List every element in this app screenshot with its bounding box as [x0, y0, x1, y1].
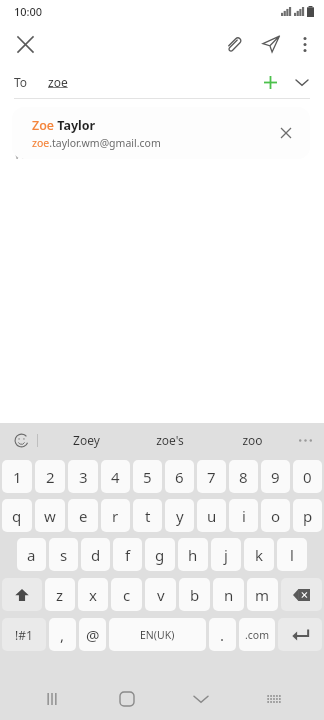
button[interactable]: t [133, 499, 162, 532]
button[interactable]: Home [105, 678, 149, 720]
button[interactable]: zoo [211, 423, 294, 457]
staticText: 9 [271, 467, 280, 487]
button[interactable]: @ [79, 618, 106, 651]
staticText: f [125, 545, 131, 565]
staticText: r [112, 506, 119, 526]
button[interactable]: Close [6, 25, 44, 63]
button[interactable]: e [68, 499, 98, 532]
staticText: e [79, 506, 88, 526]
staticText: n [224, 585, 234, 605]
button[interactable]: w [35, 499, 65, 532]
staticText: 8 [239, 467, 248, 487]
staticText: w [44, 506, 56, 526]
button[interactable]: Emoji [8, 427, 34, 453]
staticText: y [176, 506, 184, 526]
staticText: k [255, 545, 264, 565]
button[interactable]: g [145, 538, 175, 571]
staticText: 4 [111, 467, 120, 487]
button[interactable]: q [2, 499, 32, 532]
staticText: j [224, 545, 228, 565]
staticText: p [303, 506, 313, 526]
staticText: 5 [143, 467, 152, 487]
button[interactable]: EN(UK) [109, 618, 206, 651]
button[interactable]: More suggestions [292, 427, 318, 453]
button[interactable]: Recents [30, 678, 74, 720]
staticText: 3 [79, 467, 88, 487]
staticText: i [242, 506, 246, 526]
button[interactable]: 5 [133, 460, 162, 493]
button[interactable]: Zoey [44, 423, 128, 457]
staticText: .com [245, 628, 270, 642]
button[interactable]: a [17, 538, 46, 571]
button[interactable]: c [111, 578, 142, 611]
button[interactable]: k [244, 538, 274, 571]
button[interactable]: Remove recipient [272, 119, 300, 147]
button[interactable]: Shift [2, 578, 42, 611]
button[interactable]: h [178, 538, 208, 571]
button[interactable]: l [277, 538, 307, 571]
button[interactable]: Zoe Taylor [12, 107, 310, 159]
button[interactable]: x [78, 578, 108, 611]
button[interactable]: .com [239, 618, 275, 651]
button[interactable]: Hide keyboard [179, 678, 223, 720]
button[interactable]: !#1 [2, 618, 46, 651]
staticText: zoe [48, 74, 68, 90]
button[interactable]: o [261, 499, 290, 532]
staticText: zoo [242, 432, 263, 448]
staticText: 2 [46, 467, 55, 487]
button[interactable]: b [179, 578, 210, 611]
button[interactable]: 3 [68, 460, 98, 493]
staticText: Zoey [73, 432, 100, 448]
button[interactable]: Add recipient [254, 66, 286, 98]
staticText: c [123, 585, 131, 605]
button[interactable]: d [81, 538, 110, 571]
staticText: 10:00 [14, 4, 43, 19]
button[interactable]: 2 [35, 460, 65, 493]
staticText: 0 [303, 467, 312, 487]
staticText: o [271, 506, 281, 526]
button[interactable]: 8 [229, 460, 258, 493]
button[interactable]: u [197, 499, 226, 532]
staticText: z [56, 585, 64, 605]
button[interactable]: j [211, 538, 241, 571]
staticText: , [60, 625, 65, 645]
button[interactable]: 0 [293, 460, 322, 493]
staticText: d [91, 545, 101, 565]
staticText: h [188, 545, 198, 565]
button[interactable]: v [145, 578, 176, 611]
button[interactable]: More options [290, 29, 320, 59]
staticText: l [290, 545, 294, 565]
button[interactable]: n [213, 578, 244, 611]
button[interactable]: Backspace [281, 578, 322, 611]
button[interactable]: s [49, 538, 78, 571]
staticText: b [190, 585, 200, 605]
button[interactable]: . [209, 618, 236, 651]
button[interactable]: Enter [278, 618, 322, 651]
button[interactable]: Send [252, 25, 290, 63]
button[interactable]: Change keyboard [254, 679, 294, 719]
button[interactable]: 9 [261, 460, 290, 493]
button[interactable]: f [113, 538, 142, 571]
staticText: Subject [14, 111, 59, 129]
button[interactable]: z [45, 578, 75, 611]
staticText: u [207, 506, 217, 526]
button[interactable]: zoe's [128, 423, 211, 457]
button[interactable]: 4 [101, 460, 130, 493]
button[interactable]: Expand recipients [286, 66, 318, 98]
button[interactable]: m [247, 578, 278, 611]
staticText: zoe's [156, 432, 184, 448]
staticText: 1 [13, 467, 22, 487]
button[interactable]: 1 [2, 460, 32, 493]
staticText: v [157, 585, 165, 605]
staticText: q [12, 506, 22, 526]
button[interactable]: 6 [165, 460, 194, 493]
staticText: 6 [175, 467, 184, 487]
button[interactable]: Attach file [214, 25, 252, 63]
button[interactable]: y [165, 499, 194, 532]
button[interactable]: r [101, 499, 130, 532]
button[interactable]: p [293, 499, 322, 532]
button[interactable]: i [229, 499, 258, 532]
button[interactable]: , [49, 618, 76, 651]
button[interactable]: 7 [197, 460, 226, 493]
staticText: a [27, 545, 36, 565]
